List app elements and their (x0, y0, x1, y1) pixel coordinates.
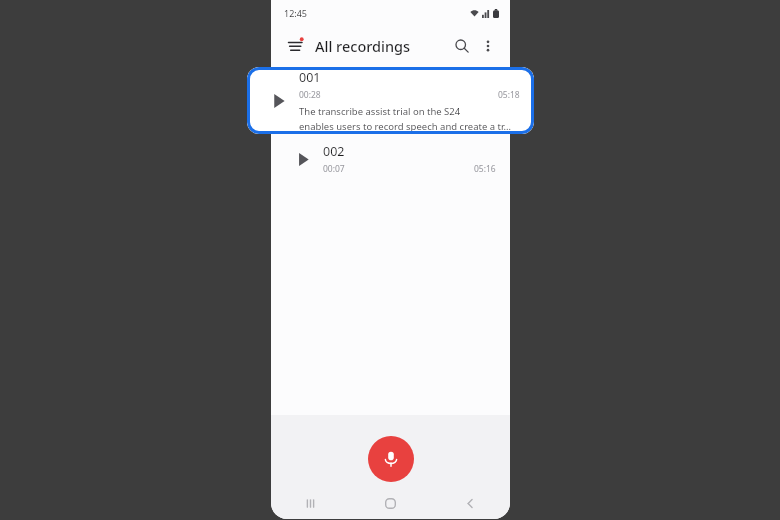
button[interactable] (271, 68, 510, 133)
button[interactable]: Record (368, 436, 414, 482)
staticText: 00:28 (299, 89, 321, 101)
staticText: The transcribe assist trial on the S24 (299, 105, 461, 118)
staticText: All recordings (315, 36, 411, 56)
button[interactable]: More options (477, 35, 499, 57)
button[interactable]: 001 (247, 67, 534, 134)
button[interactable]: Menu (284, 35, 306, 57)
staticText: 05:16 (474, 163, 496, 175)
staticText: 002 (323, 143, 345, 160)
staticText: 05:18 (498, 89, 520, 101)
button[interactable]: Recents (271, 487, 350, 519)
button[interactable]: Search (450, 34, 474, 58)
button[interactable]: Back (430, 487, 510, 519)
staticText: 001 (299, 69, 321, 86)
button[interactable]: 002 (271, 138, 510, 180)
button[interactable]: Home (350, 487, 430, 519)
staticText: 00:07 (323, 163, 345, 175)
staticText: 12:45 (284, 7, 308, 19)
staticText: enables users to record speech and creat… (299, 120, 511, 133)
